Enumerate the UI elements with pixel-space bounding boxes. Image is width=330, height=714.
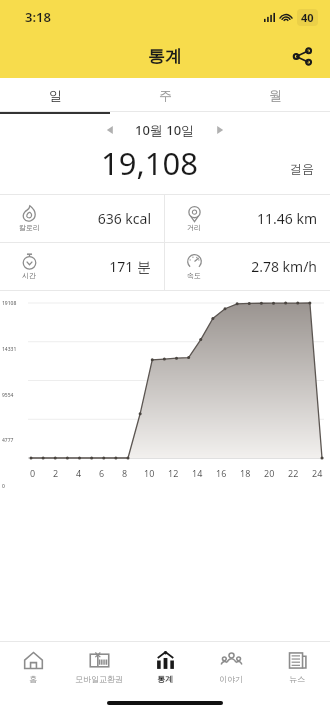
staticText: 18: [240, 467, 251, 479]
staticText: 뉴스: [289, 674, 305, 684]
staticText: 40: [301, 10, 314, 25]
staticText: 걸음: [290, 161, 314, 176]
staticText: 9554: [2, 392, 14, 399]
staticText: 0: [2, 483, 5, 490]
button[interactable]: 이야기: [198, 642, 264, 692]
button[interactable]: 월: [220, 78, 330, 111]
staticText: 시간: [22, 271, 36, 280]
staticText: 19108: [2, 300, 17, 307]
staticText: 22: [288, 467, 299, 479]
staticText: 4777: [2, 437, 14, 444]
staticText: 171 분: [45, 257, 151, 276]
button[interactable]: 모바일교환권: [66, 642, 132, 692]
staticText: 홈: [29, 674, 37, 684]
staticText: 10월 10일: [135, 121, 195, 139]
staticText: 6: [99, 467, 105, 479]
button[interactable]: 거리: [165, 195, 330, 242]
staticText: 속도: [187, 271, 201, 280]
button[interactable]: 홈: [0, 642, 66, 692]
staticText: 통계: [157, 674, 173, 684]
button[interactable]: 주: [110, 78, 220, 111]
button[interactable]: 시간: [0, 243, 164, 290]
button[interactable]: Previous day: [99, 120, 121, 140]
staticText: 11.46 km: [210, 209, 317, 228]
button[interactable]: Next day: [209, 120, 231, 140]
staticText: 2.78 km/h: [210, 257, 317, 276]
staticText: 주: [159, 87, 172, 103]
button[interactable]: 통계: [132, 642, 198, 692]
staticText: 4: [76, 467, 82, 479]
staticText: 636 kcal: [45, 209, 151, 228]
staticText: 칼로리: [19, 223, 40, 232]
staticText: 일: [49, 87, 62, 103]
button[interactable]: 뉴스: [264, 642, 330, 692]
staticText: 10: [144, 467, 155, 479]
button[interactable]: 일: [0, 78, 110, 111]
staticText: 20: [264, 467, 275, 479]
staticText: 14331: [2, 346, 17, 353]
staticText: 8: [122, 467, 128, 479]
staticText: 19,108: [101, 142, 198, 184]
button[interactable]: Share: [284, 38, 320, 74]
staticText: 16: [216, 467, 227, 479]
staticText: 0: [30, 467, 36, 479]
staticText: 24: [312, 467, 323, 479]
staticText: 월: [269, 87, 282, 103]
staticText: 거리: [187, 223, 201, 232]
staticText: 통계: [148, 46, 182, 67]
staticText: 2: [53, 467, 59, 479]
button[interactable]: 속도: [165, 243, 330, 290]
button[interactable]: 칼로리: [0, 195, 164, 242]
staticText: 12: [168, 467, 179, 479]
staticText: 모바일교환권: [75, 674, 123, 684]
staticText: 3:18: [25, 8, 51, 26]
staticText: 14: [192, 467, 203, 479]
staticText: 이야기: [219, 674, 243, 684]
